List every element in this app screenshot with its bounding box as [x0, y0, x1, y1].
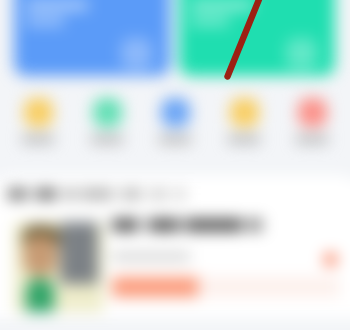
button[interactable]: Action five	[284, 98, 340, 143]
button[interactable]: Action two	[79, 98, 135, 143]
button[interactable]: More	[324, 253, 337, 266]
button[interactable]: Action three	[147, 98, 203, 143]
button[interactable]: Action four	[216, 98, 272, 143]
button[interactable]: Action one	[10, 98, 66, 143]
button[interactable]	[112, 277, 340, 297]
button[interactable]: Card one	[14, 0, 170, 76]
button[interactable]: Card two	[179, 0, 335, 76]
